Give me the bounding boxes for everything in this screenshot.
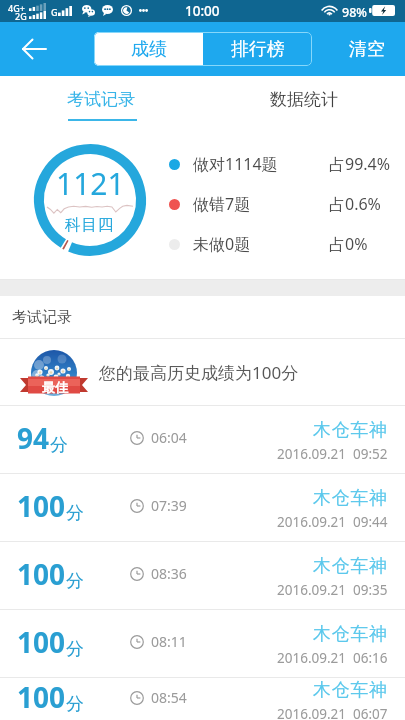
staticText: 100	[17, 623, 66, 661]
staticText: 10:00	[185, 2, 220, 20]
staticText: 占0.6%	[329, 193, 381, 215]
button[interactable]: 94	[0, 406, 405, 473]
staticText: 木仓车神	[313, 623, 388, 646]
staticText: 分	[66, 570, 84, 593]
staticText: 分	[66, 502, 84, 525]
staticText: 98%	[342, 4, 367, 21]
staticText: 分	[66, 693, 84, 716]
button[interactable]: 数据统计	[202, 76, 405, 130]
staticText: 2016.09.21 06:07	[277, 705, 388, 720]
staticText: 4G+	[8, 2, 25, 14]
staticText: G	[51, 6, 58, 18]
staticText: 08:11	[151, 632, 187, 651]
staticText: 2016.09.21 09:52	[277, 445, 388, 463]
staticText: 分	[66, 638, 84, 661]
staticText: 未做0题	[193, 233, 329, 255]
staticText: 成绩	[131, 38, 167, 61]
button[interactable]: 最佳	[0, 339, 405, 405]
staticText: 木仓车神	[313, 419, 388, 442]
button[interactable]: 100	[0, 678, 405, 720]
button[interactable]: Back	[0, 22, 54, 76]
staticText: 06:04	[151, 428, 187, 447]
button[interactable]: 100	[0, 474, 405, 541]
staticText: 做对1114题	[193, 153, 329, 175]
staticText: 木仓车神	[313, 679, 388, 702]
staticText: 占0%	[329, 233, 368, 255]
staticText: 木仓车神	[313, 555, 388, 578]
staticText: 清空	[349, 38, 385, 61]
staticText: 1121	[56, 163, 125, 204]
staticText: 您的最高历史成绩为100分	[99, 361, 299, 384]
staticText: 木仓车神	[313, 487, 388, 510]
staticText: 分	[50, 434, 68, 457]
staticText: 08:54	[151, 688, 187, 707]
staticText: 100	[17, 487, 66, 525]
staticText: 考试记录	[67, 89, 135, 110]
staticText: 排行榜	[231, 38, 285, 61]
staticText: 2016.09.21 09:44	[277, 513, 388, 531]
staticText: 考试记录	[12, 308, 72, 327]
button[interactable]: 100	[0, 610, 405, 677]
button[interactable]: 100	[0, 542, 405, 609]
button[interactable]: 清空	[349, 38, 385, 61]
staticText: 08:36	[151, 564, 187, 583]
button[interactable]: 排行榜	[203, 32, 312, 66]
button[interactable]: 成绩	[94, 32, 203, 66]
staticText: 最佳	[42, 379, 68, 395]
staticText: 100	[17, 555, 66, 593]
staticText: 2016.09.21 06:16	[277, 649, 388, 667]
staticText: 2G	[15, 10, 27, 22]
staticText: 07:39	[151, 496, 187, 515]
staticText: 占99.4%	[329, 153, 391, 175]
staticText: 做错7题	[193, 193, 329, 215]
staticText: 94	[17, 419, 50, 457]
staticText: 科目四	[65, 215, 115, 235]
staticText: 2016.09.21 09:35	[277, 581, 388, 599]
staticText: 数据统计	[270, 89, 338, 110]
button[interactable]: 考试记录	[0, 76, 202, 130]
staticText: 100	[17, 678, 66, 716]
